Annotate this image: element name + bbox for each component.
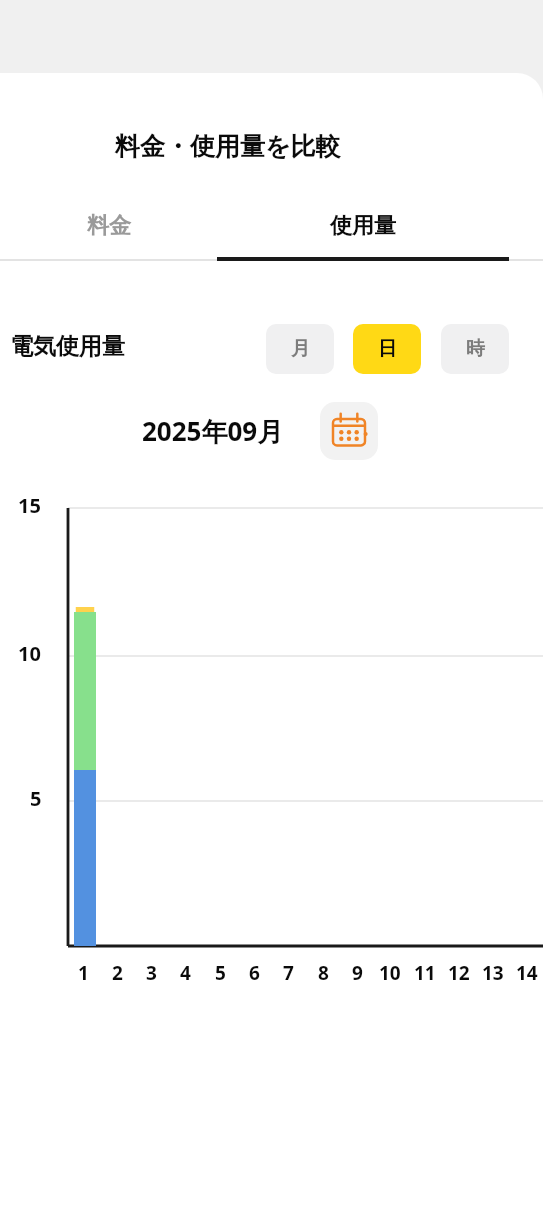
- staticText: 6: [249, 960, 260, 986]
- staticText: 12: [448, 960, 470, 986]
- staticText: 10: [379, 960, 401, 986]
- button[interactable]: 使用量: [217, 193, 509, 259]
- staticText: 8: [318, 960, 329, 986]
- staticText: 15: [18, 492, 41, 519]
- staticText: 2: [112, 960, 123, 986]
- button[interactable]: 日: [353, 324, 421, 374]
- staticText: 5: [30, 785, 42, 812]
- staticText: 2025年09月: [142, 413, 284, 449]
- staticText: 10: [18, 640, 41, 667]
- staticText: 14: [516, 960, 538, 986]
- staticText: 9: [352, 960, 363, 986]
- staticText: 使用量: [330, 212, 396, 240]
- staticText: 1: [78, 960, 89, 986]
- staticText: 5: [215, 960, 226, 986]
- button[interactable]: 月: [266, 324, 334, 374]
- button[interactable]: 時: [441, 324, 509, 374]
- staticText: 時: [466, 337, 485, 361]
- button[interactable]: 日付を選択: [320, 402, 378, 460]
- staticText: 7: [283, 960, 294, 986]
- staticText: 3: [146, 960, 157, 986]
- staticText: 11: [414, 960, 436, 986]
- staticText: 電気使用量: [10, 332, 125, 361]
- staticText: 13: [482, 960, 504, 986]
- staticText: 月: [291, 337, 310, 361]
- staticText: 4: [180, 960, 191, 986]
- button[interactable]: 料金: [0, 193, 217, 259]
- staticText: 料金: [87, 212, 131, 240]
- staticText: 料金・使用量を比較: [115, 131, 341, 162]
- staticText: 日: [378, 337, 397, 361]
